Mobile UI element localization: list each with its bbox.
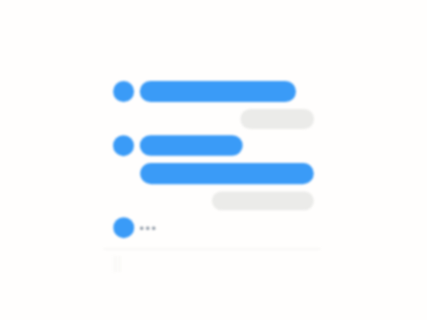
- button[interactable]: Sender avatar: [113, 135, 134, 156]
- button[interactable]: Message bubble: [140, 163, 314, 184]
- button[interactable]: Sender avatar: [113, 81, 134, 102]
- button[interactable]: Reply bubble: [240, 109, 314, 129]
- button[interactable]: Message bubble: [140, 135, 243, 156]
- button[interactable]: Sender avatar: [113, 217, 134, 238]
- button[interactable]: Message bubble: [140, 81, 296, 102]
- button[interactable]: Reply bubble: [212, 191, 314, 210]
- button[interactable]: Typing: [136, 218, 160, 238]
